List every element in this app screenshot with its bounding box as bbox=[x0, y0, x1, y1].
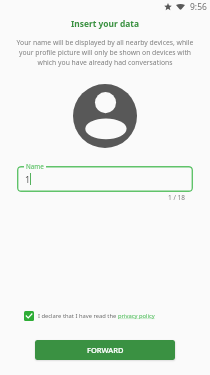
button[interactable]: FORWARD bbox=[35, 340, 175, 360]
staticText: 1 bbox=[25, 173, 31, 185]
staticText: 9:56 bbox=[190, 1, 207, 13]
button[interactable]: privacy policy bbox=[118, 312, 155, 320]
staticText: Name bbox=[26, 162, 44, 171]
staticText: I declare that I have read the bbox=[38, 312, 118, 320]
staticText: Insert your data bbox=[0, 18, 210, 29]
button[interactable]: 1 bbox=[17, 166, 193, 192]
button[interactable]: Profile picture bbox=[73, 84, 137, 148]
staticText: FORWARD bbox=[87, 345, 124, 355]
staticText: Your name will be displayed by all nearb… bbox=[14, 38, 196, 67]
button[interactable]: Accept privacy policy bbox=[24, 311, 34, 321]
staticText: 1 / 18 bbox=[0, 193, 185, 202]
